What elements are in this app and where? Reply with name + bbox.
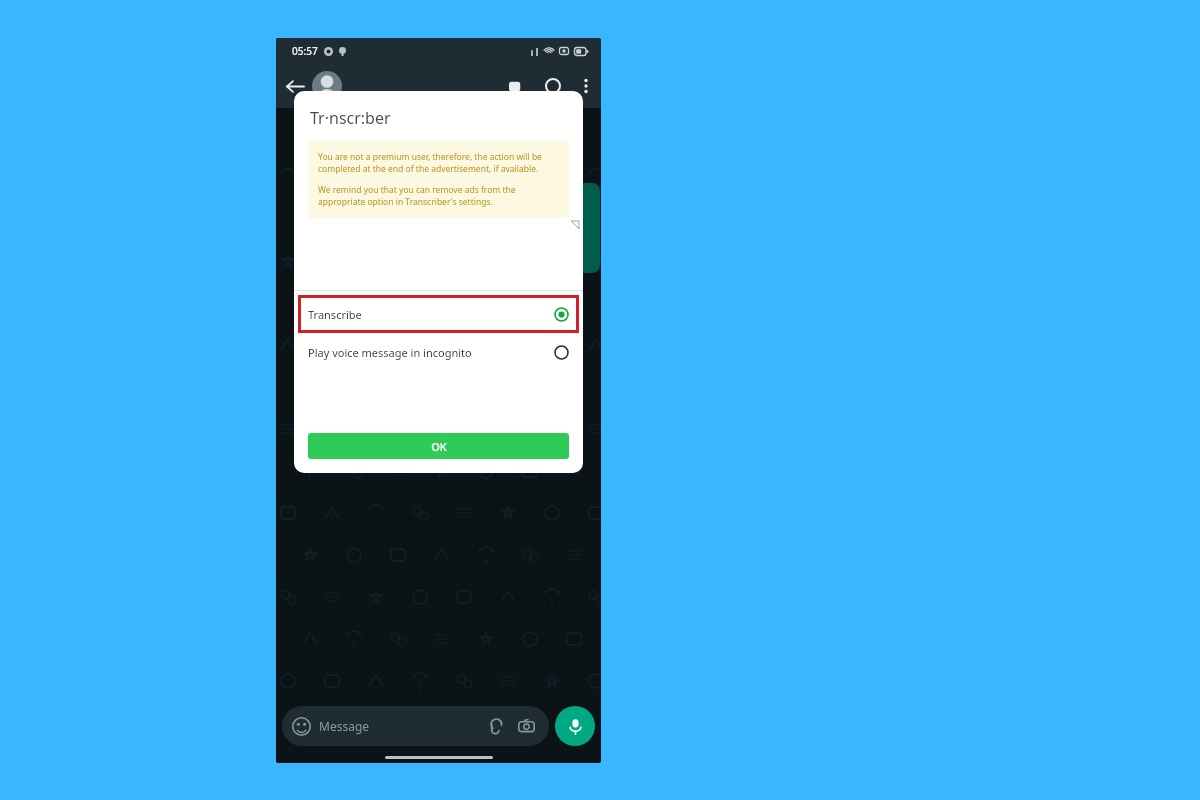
- button[interactable]: Video call: [499, 68, 535, 104]
- button[interactable]: Contact avatar: [312, 71, 342, 101]
- button[interactable]: Record voice message: [555, 706, 595, 746]
- button[interactable]: Voice call: [535, 68, 571, 104]
- staticText: 05:57: [292, 44, 318, 58]
- staticText: Play voice message in incognito: [308, 345, 472, 360]
- button[interactable]: Transcribe: [298, 295, 579, 333]
- button[interactable]: Attach: [483, 713, 509, 739]
- button[interactable]: Play voice message in incognito: [294, 333, 583, 371]
- staticText: OK: [431, 439, 447, 454]
- button[interactable]: More options: [571, 71, 601, 101]
- staticText: Tr·nscr:ber: [310, 107, 391, 129]
- staticText: We remind you that you can remove ads fr…: [318, 184, 559, 208]
- staticText: Transcribe: [308, 307, 362, 322]
- staticText: Message: [319, 718, 370, 734]
- staticText: You are not a premium user, therefore, t…: [318, 151, 559, 175]
- button[interactable]: Message: [282, 706, 549, 746]
- button[interactable]: Camera: [513, 713, 539, 739]
- button[interactable]: Back: [276, 68, 312, 104]
- button[interactable]: OK: [308, 433, 569, 459]
